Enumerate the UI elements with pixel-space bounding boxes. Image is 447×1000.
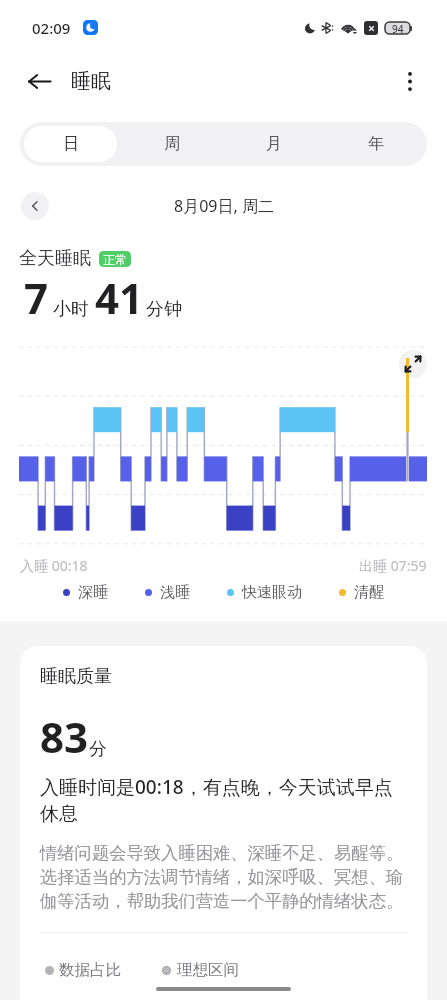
staticText: 41 [95,269,144,326]
staticText: 快速眼动 [242,583,302,602]
staticText: 年 [368,134,384,154]
staticText: 全天睡眠 [19,247,91,270]
button[interactable]: 年 [329,126,423,162]
staticText: 02:09 [32,18,71,38]
staticText: 理想区间 [177,960,239,980]
staticText: 出睡 07:59 [359,556,427,575]
staticText: 94 [392,22,404,34]
button[interactable]: 周 [125,126,219,162]
staticText: 分钟 [146,298,182,321]
staticText: 入睡时间是00:18，有点晚，今天试试早点休息 [40,774,407,825]
button[interactable]: More options [391,55,429,107]
staticText: 83 [40,708,89,765]
button[interactable]: 日 [24,126,117,162]
staticText: 深睡 [78,583,108,602]
button[interactable]: Previous day [21,192,49,220]
staticText: 数据占比 [59,960,121,980]
staticText: 入睡 00:18 [20,556,88,575]
staticText: 小时 [53,298,89,321]
button[interactable]: Back [17,55,61,107]
staticText: 分 [89,738,107,761]
staticText: 7 [24,269,49,326]
staticText: 月 [266,134,282,154]
button[interactable]: Expand chart [399,350,427,378]
staticText: 8月09日, 周二 [174,195,274,217]
staticText: 睡眠质量 [40,665,112,688]
staticText: 日 [63,134,79,154]
staticText: 正常 [103,252,127,267]
button[interactable]: 月 [227,126,321,162]
staticText: 周 [164,134,180,154]
staticText: 睡眠 [71,69,111,94]
staticText: 浅睡 [160,583,190,602]
staticText: 情绪问题会导致入睡困难、深睡不足、易醒等。选择适当的方法调节情绪，如深呼吸、冥想… [40,842,407,912]
staticText: 清醒 [354,583,384,602]
